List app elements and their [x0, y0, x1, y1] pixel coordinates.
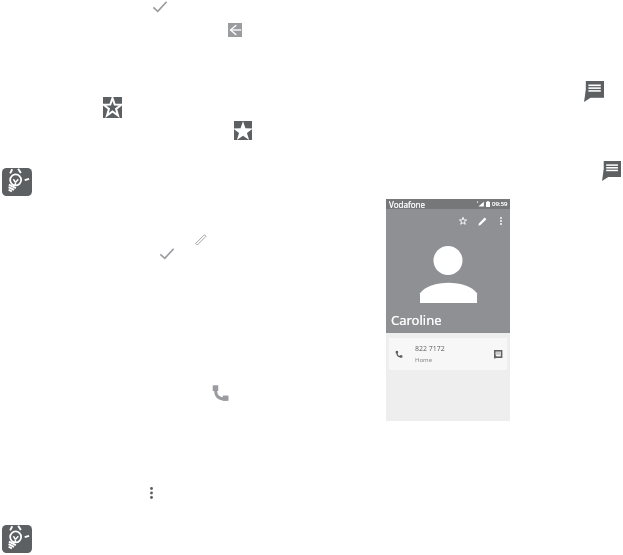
- button[interactable]: Favourite: [457, 215, 469, 227]
- button[interactable]: Tip: [2, 168, 32, 196]
- staticText: Home: [415, 356, 433, 364]
- button[interactable]: More options: [495, 215, 507, 227]
- button[interactable]: More options: [146, 484, 157, 503]
- button[interactable]: Message: [584, 81, 604, 102]
- button[interactable]: Message: [602, 161, 621, 181]
- button[interactable]: Back: [228, 23, 242, 37]
- button[interactable]: Favourite: [230, 119, 256, 143]
- staticText: Caroline: [391, 311, 442, 329]
- staticText: 09:59: [492, 200, 508, 208]
- button[interactable]: Edit: [193, 232, 209, 248]
- staticText: Vodafone: [389, 199, 425, 209]
- staticText: 822 7172: [415, 344, 445, 354]
- button[interactable]: Add to favourites: [99, 95, 126, 120]
- button[interactable]: Tip: [2, 525, 32, 553]
- button[interactable]: Send message: [489, 338, 507, 370]
- button[interactable]: Edit: [476, 215, 488, 227]
- button[interactable]: Done: [152, 0, 169, 17]
- button[interactable]: Call: [211, 383, 230, 402]
- button[interactable]: Done: [159, 247, 176, 264]
